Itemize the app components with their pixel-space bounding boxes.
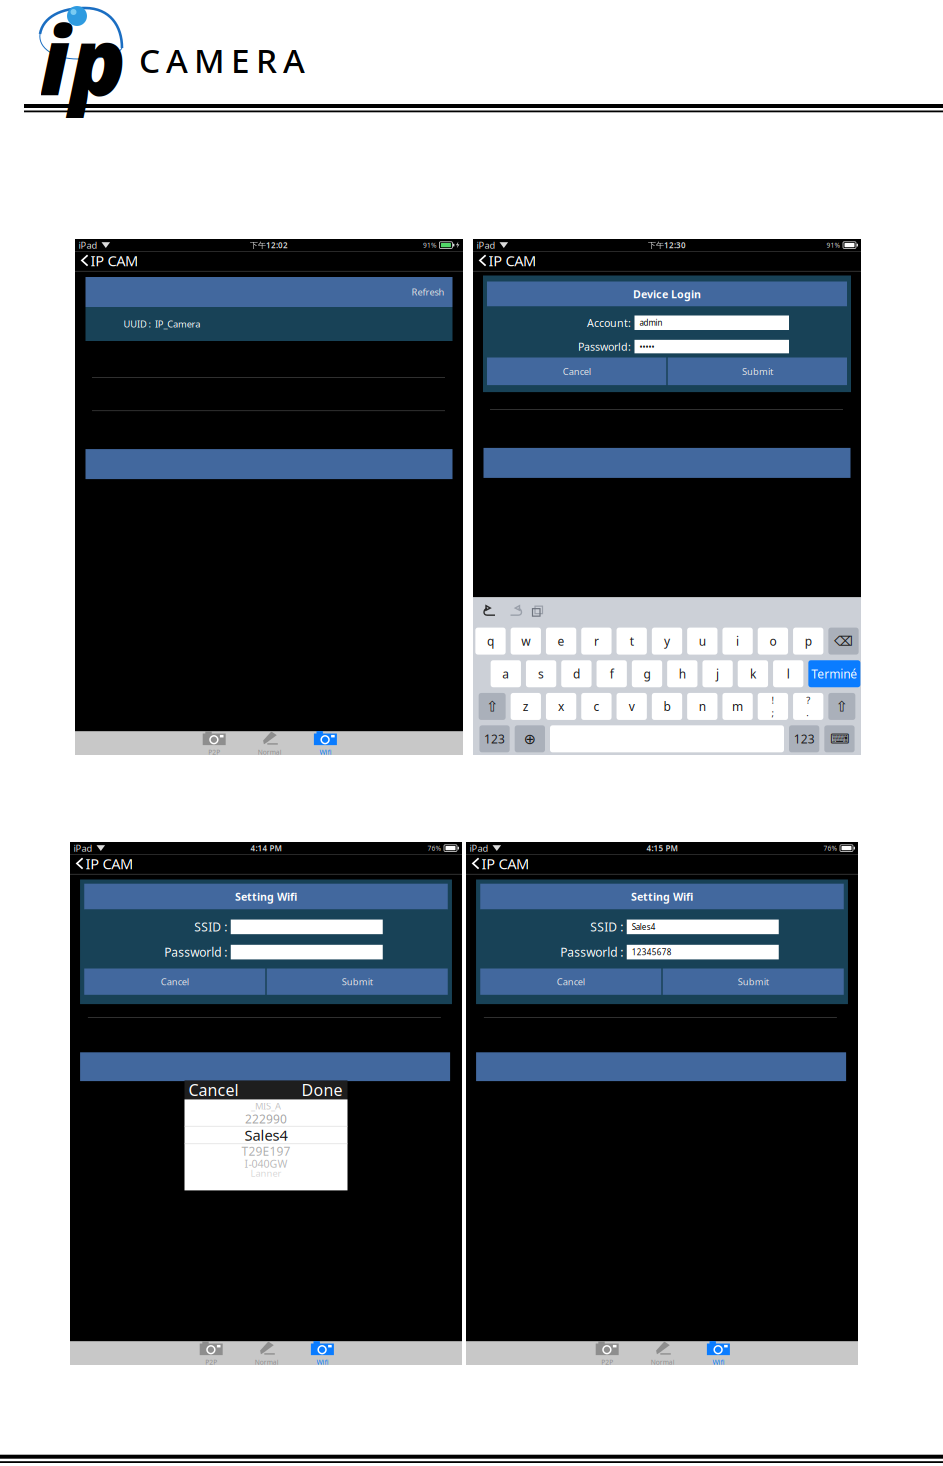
- staticText: p: [805, 633, 812, 649]
- staticText: a: [502, 666, 509, 682]
- button[interactable]: Wifi: [693, 1341, 743, 1365]
- staticText: Wifi: [712, 1358, 724, 1367]
- button[interactable]: q: [475, 628, 506, 655]
- button[interactable]: 123: [479, 725, 510, 752]
- button[interactable]: o: [758, 628, 788, 655]
- staticText: IP CAM: [488, 251, 536, 270]
- staticText: v: [629, 698, 635, 714]
- staticText: UUID : IP_Camera: [123, 318, 200, 330]
- button[interactable]: l: [773, 660, 803, 687]
- button[interactable]: Submit: [267, 968, 448, 995]
- staticText: Cancel: [563, 365, 591, 377]
- button[interactable]: w: [511, 628, 541, 655]
- button[interactable]: a: [491, 660, 521, 687]
- staticText: Passworld :: [560, 944, 623, 960]
- staticText: ⇧: [486, 698, 498, 715]
- staticText: d: [573, 666, 580, 682]
- button[interactable]: ⌨: [824, 725, 855, 752]
- staticText: 91%: [826, 241, 840, 250]
- button[interactable]: i: [722, 628, 753, 655]
- button[interactable]: k: [738, 660, 768, 687]
- button[interactable]: IP CAM: [70, 853, 133, 874]
- staticText: ! ;: [771, 694, 774, 719]
- button[interactable]: y: [652, 628, 682, 655]
- staticText: _MIS_A: [251, 1100, 281, 1112]
- staticText: 76%: [823, 844, 837, 853]
- button[interactable]: Done: [301, 1077, 347, 1102]
- button[interactable]: r: [581, 628, 611, 655]
- button[interactable]: ! ;: [758, 693, 788, 720]
- staticText: 123: [794, 731, 815, 747]
- button[interactable]: ⇧: [479, 693, 506, 720]
- staticText: Submit: [742, 365, 773, 377]
- button[interactable]: Wifi: [297, 1341, 347, 1365]
- staticText: Submit: [738, 975, 769, 988]
- staticText: r: [594, 633, 599, 649]
- button[interactable]: e: [546, 628, 576, 655]
- staticText: P2P: [205, 1358, 217, 1367]
- button[interactable]: Cancel: [184, 1077, 238, 1102]
- staticText: IP CAM: [90, 251, 138, 270]
- staticText: j: [716, 666, 719, 682]
- staticText: SSID :: [194, 919, 227, 935]
- button[interactable]: t: [616, 628, 647, 655]
- button[interactable]: Submit: [668, 357, 847, 385]
- staticText: Normal: [651, 1358, 675, 1367]
- staticText: f: [610, 666, 614, 682]
- button[interactable]: Terminé: [808, 660, 860, 687]
- button[interactable]: 123: [789, 725, 819, 752]
- button[interactable]: IP CAM: [466, 853, 529, 874]
- button[interactable]: h: [667, 660, 697, 687]
- staticText: ? .: [806, 694, 810, 719]
- button[interactable]: z: [511, 693, 541, 720]
- button[interactable]: u: [687, 628, 717, 655]
- staticText: b: [663, 698, 670, 714]
- staticText: Submit: [342, 975, 373, 988]
- button[interactable]: Cancel: [480, 968, 661, 995]
- button[interactable]: P2P: [186, 1341, 236, 1365]
- button[interactable]: ⊕: [515, 725, 545, 752]
- button[interactable]: Wifi: [300, 731, 350, 755]
- staticText: ⌨: [830, 731, 849, 746]
- staticText: 4:14 PM: [250, 843, 281, 853]
- staticText: •••••: [639, 341, 654, 352]
- staticText: IP CAM: [481, 854, 529, 873]
- button[interactable]: Cancel: [487, 357, 666, 385]
- button[interactable]: Cancel: [84, 968, 265, 995]
- button[interactable]: g: [632, 660, 662, 687]
- button[interactable]: Refresh: [85, 277, 452, 307]
- button[interactable]: ⇧: [828, 693, 855, 720]
- staticText: Refresh: [411, 286, 444, 298]
- staticText: 下午12:02: [250, 240, 288, 250]
- button[interactable]: P2P: [582, 1341, 632, 1365]
- button[interactable]: IP CAM: [473, 250, 536, 271]
- button[interactable]: m: [722, 693, 753, 720]
- button[interactable]: Submit: [663, 968, 844, 995]
- button[interactable]: ⌫: [828, 628, 859, 655]
- button[interactable]: Normal: [242, 1341, 292, 1365]
- staticText: s: [538, 666, 544, 682]
- staticText: c: [593, 698, 599, 714]
- button[interactable]: IP CAM: [75, 250, 138, 271]
- staticText: Normal: [255, 1358, 279, 1367]
- button[interactable]: ? .: [793, 693, 823, 720]
- button[interactable]: [550, 725, 784, 752]
- button[interactable]: b: [652, 693, 682, 720]
- button[interactable]: n: [687, 693, 717, 720]
- button[interactable]: v: [616, 693, 647, 720]
- button[interactable]: d: [561, 660, 591, 687]
- button[interactable]: x: [546, 693, 576, 720]
- button[interactable]: P2P: [189, 731, 239, 755]
- button[interactable]: p: [793, 628, 823, 655]
- button[interactable]: f: [596, 660, 627, 687]
- button[interactable]: c: [581, 693, 611, 720]
- staticText: Wifi: [316, 1358, 328, 1367]
- staticText: n: [699, 698, 706, 714]
- staticText: Passworld:: [578, 339, 631, 354]
- button[interactable]: j: [702, 660, 733, 687]
- staticText: iPad: [73, 842, 92, 854]
- button[interactable]: Normal: [638, 1341, 688, 1365]
- button[interactable]: Normal: [245, 731, 295, 755]
- button[interactable]: s: [526, 660, 556, 687]
